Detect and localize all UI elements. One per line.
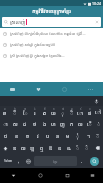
- staticText: ខ្មែរ: [53, 159, 58, 164]
- button[interactable]: Shift: [0, 142, 11, 154]
- staticText: ៤: [34, 107, 36, 110]
- other: History: [3, 32, 7, 36]
- button[interactable]: Change language: [23, 156, 33, 166]
- staticText: ឍ: [21, 145, 26, 152]
- button[interactable]: More options: [77, 82, 103, 96]
- button[interactable]: ២: [10, 106, 20, 118]
- staticText: ញ: [60, 121, 65, 128]
- staticText: ែ: [23, 110, 28, 117]
- button[interactable]: Back: [0, 168, 27, 183]
- button[interactable]: ៩: [76, 106, 85, 118]
- staticText: ២: [14, 107, 16, 110]
- button[interactable]: ប: [43, 130, 53, 142]
- button[interactable]: ន: [53, 130, 63, 142]
- button[interactable]: ,: [15, 156, 23, 166]
- staticText: ឧ: [58, 145, 62, 152]
- staticText: .: [81, 158, 83, 164]
- staticText: ស្រលាញ់: [10, 19, 26, 25]
- button[interactable]: ខ: [11, 130, 22, 142]
- button[interactable]: Search: [90, 157, 99, 166]
- button[interactable]: Search: [2, 17, 101, 27]
- button[interactable]: ៣: [20, 106, 30, 118]
- button[interactable]: ៦: [49, 106, 58, 118]
- staticText: 10:24: [92, 1, 101, 6]
- button[interactable]: ៍: [73, 142, 82, 154]
- button[interactable]: ឮ: [37, 142, 46, 154]
- button[interactable]: ?១២៣: [1, 156, 15, 166]
- button[interactable]: Clear: [95, 20, 99, 24]
- button[interactable]: Screenshot: [81, 168, 103, 183]
- staticText: រ: [34, 110, 36, 117]
- button[interactable]: ឋ: [0, 130, 11, 142]
- button[interactable]: ឪ: [46, 142, 55, 154]
- button[interactable]: ៧: [58, 106, 67, 118]
- button[interactable]: History: [0, 28, 103, 39]
- button[interactable]: ឧ: [55, 142, 64, 154]
- button[interactable]: ដ: [20, 118, 30, 130]
- staticText: ឡ: [30, 145, 35, 152]
- button[interactable]: Emoji: [51, 82, 77, 96]
- button[interactable]: ឌ: [11, 142, 19, 154]
- button[interactable]: ៅ: [94, 106, 103, 118]
- staticText: ។: [87, 133, 90, 140]
- button[interactable]: Recent apps: [54, 168, 81, 183]
- staticText: ដ: [23, 121, 27, 128]
- button[interactable]: ។: [83, 130, 93, 142]
- button[interactable]: ៌: [82, 142, 91, 154]
- button[interactable]: History: [0, 39, 103, 50]
- button[interactable]: Voice input: [89, 96, 103, 106]
- staticText: ង: [43, 121, 47, 128]
- button[interactable]: ០: [85, 106, 94, 118]
- button[interactable]: ស: [10, 118, 20, 130]
- staticText: ហ: [51, 121, 56, 128]
- staticText: ច: [26, 133, 30, 140]
- button[interactable]: ថ: [30, 118, 40, 130]
- button[interactable]: ច: [22, 130, 33, 142]
- button[interactable]: ហ: [49, 118, 58, 130]
- button[interactable]: ៤: [30, 106, 40, 118]
- staticText: ប: [46, 133, 50, 140]
- button[interactable]: ា: [0, 118, 10, 130]
- button[interactable]: ឩ: [64, 142, 73, 154]
- button[interactable]: ៥: [40, 106, 49, 118]
- staticText: ល: [78, 121, 83, 128]
- staticText: ៥: [44, 107, 46, 110]
- button[interactable]: History: [0, 50, 103, 61]
- button[interactable]: Home: [27, 168, 54, 183]
- button[interactable]: Stickers: [25, 82, 51, 96]
- button[interactable]: Keyboard: [0, 82, 25, 96]
- button[interactable]: ឍ: [19, 142, 28, 154]
- button[interactable]: .: [78, 156, 86, 166]
- staticText: ឮ: [40, 145, 44, 152]
- staticText: ឋ: [4, 133, 8, 140]
- staticText: ៩: [80, 107, 82, 110]
- button[interactable]: Backspace: [91, 142, 103, 154]
- button[interactable]: វ: [33, 130, 43, 142]
- button[interactable]: ឡ: [28, 142, 37, 154]
- staticText: ?១២៣: [4, 159, 13, 163]
- button[interactable]: ក: [67, 118, 76, 130]
- staticText: ិ: [70, 110, 74, 117]
- button[interactable]: Space: [34, 156, 77, 166]
- button[interactable]: ៨: [67, 106, 76, 118]
- staticText: ក: [70, 121, 74, 128]
- staticText: ផ: [88, 110, 92, 117]
- other: Search: [4, 20, 8, 24]
- button[interactable]: ១: [0, 106, 10, 118]
- button[interactable]: ល: [76, 118, 85, 130]
- button[interactable]: ់: [94, 118, 103, 130]
- staticText: ន: [56, 133, 60, 140]
- button[interactable]: ង: [40, 118, 49, 130]
- button[interactable]: ើ: [85, 118, 94, 130]
- button[interactable]: ម: [63, 130, 73, 142]
- staticText: ឹ: [13, 110, 17, 117]
- staticText: ា: [3, 121, 8, 128]
- staticText: ើ: [87, 121, 92, 128]
- button[interactable]: ៊: [93, 130, 103, 142]
- button[interactable]: ុំ: [73, 130, 83, 142]
- staticText: ស្រលាញ់ សង្សា ក្នុងន័យស្នេហា: [10, 42, 56, 47]
- button[interactable]: ញ: [58, 118, 67, 130]
